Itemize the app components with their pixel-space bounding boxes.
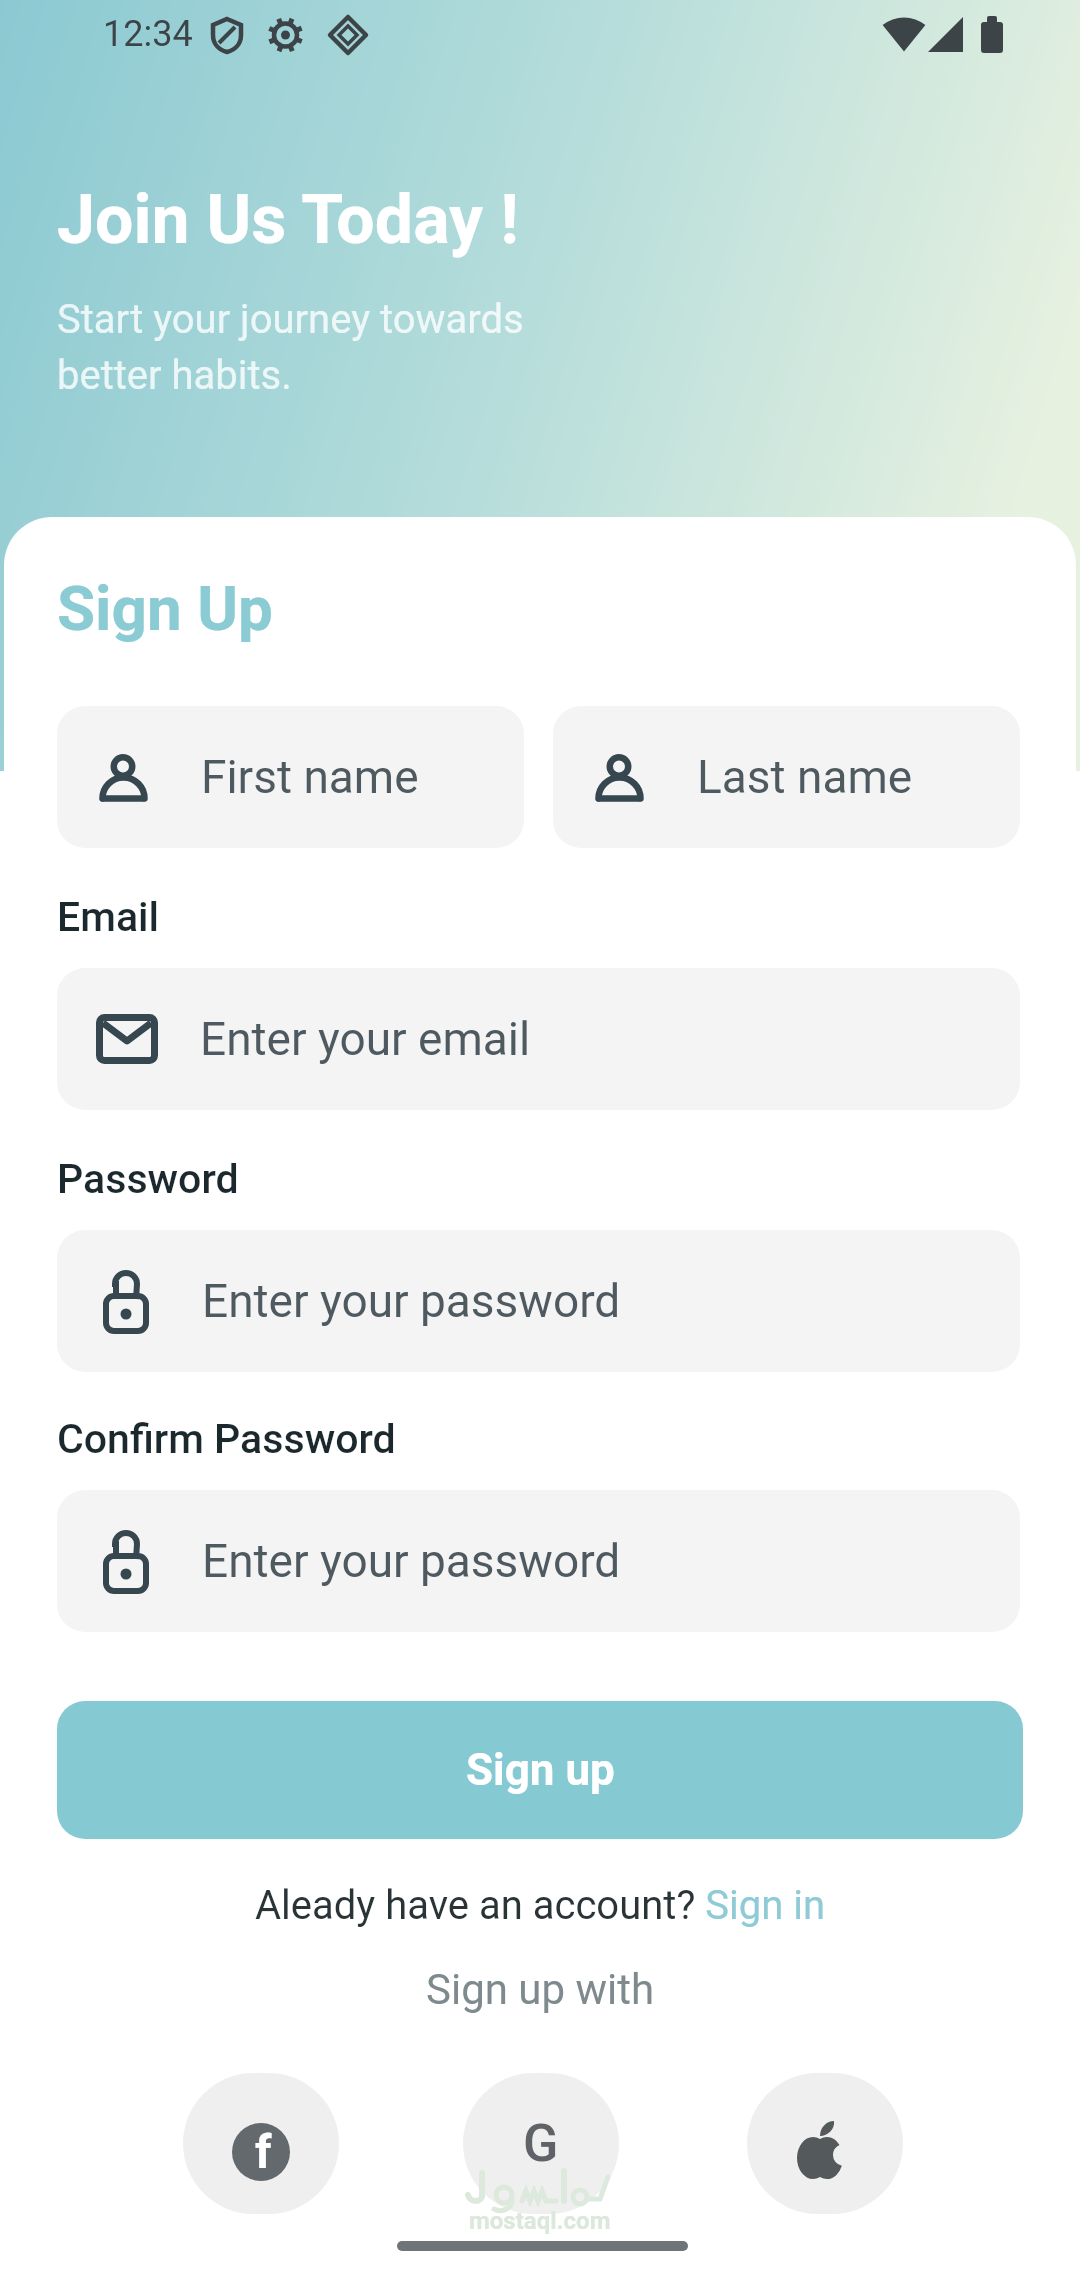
button[interactable]: First name [57,706,524,848]
staticText: Confirm Password [57,1415,396,1463]
staticText: Email [57,893,160,941]
button[interactable]: f [183,2073,339,2214]
staticText: Enter your email [200,1012,531,1066]
button[interactable]: Sign up [57,1701,1023,1839]
staticText: Join Us Today ! [57,180,519,260]
button[interactable] [747,2073,903,2214]
staticText: Sign Up [57,572,273,645]
staticText: Last name [697,750,913,804]
staticText: Enter your password [202,1274,621,1328]
staticText: Sign up with [426,1965,655,2014]
staticText: Sign up [466,1744,615,1796]
button[interactable]: G [463,2073,619,2214]
button[interactable]: Aleady have an account? Sign in [255,1882,825,1929]
staticText: First name [201,750,419,804]
staticText: Start your journey towards better habits… [57,296,524,399]
staticText: f [255,2125,272,2179]
staticText: 12:34 [103,13,193,55]
button[interactable]: Enter your password [57,1230,1020,1372]
staticText: G [523,2113,559,2174]
staticText: Password [57,1155,239,1203]
staticText: Enter your password [202,1534,621,1588]
button[interactable]: Enter your email [57,968,1020,1110]
button[interactable]: Enter your password [57,1490,1020,1632]
staticText: mostaql.com [469,2207,611,2235]
button[interactable]: Last name [553,706,1020,848]
